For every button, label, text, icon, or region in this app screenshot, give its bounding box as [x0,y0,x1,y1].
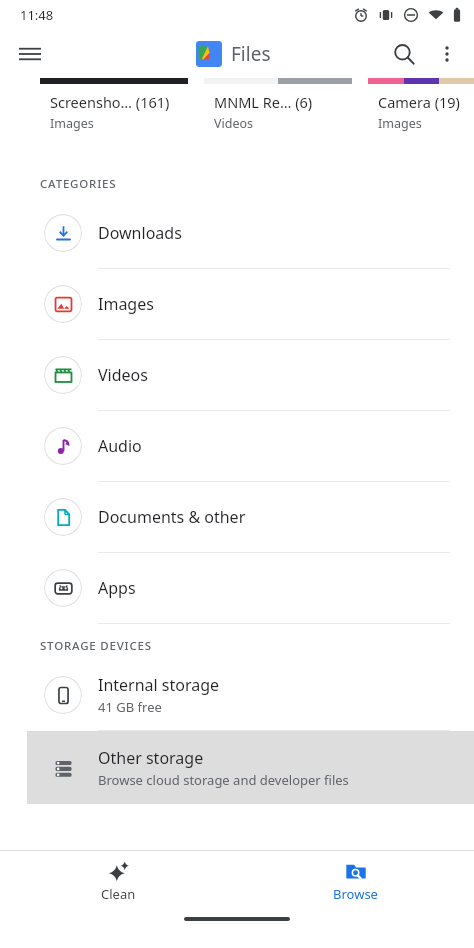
staticText: Browse [333,885,378,903]
staticText: Videos [214,115,254,132]
button[interactable]: Audio [0,411,474,481]
button[interactable]: Browse [237,851,474,911]
staticText: Other storage [98,747,204,769]
button[interactable]: Images [0,269,474,339]
staticText: Documents & other [98,506,246,528]
button[interactable]: More options [426,33,468,75]
staticText: STORAGE DEVICES [40,638,152,654]
button[interactable]: Internal storage [0,660,474,730]
staticText: Downloads [98,222,182,244]
staticText: Files [231,41,271,67]
staticText: Images [378,115,422,132]
button[interactable]: Downloads [0,198,474,268]
staticText: CATEGORIES [40,176,117,192]
staticText: Browse cloud storage and developer files [98,771,349,789]
staticText: 11:48 [20,6,54,24]
staticText: Clean [101,885,136,903]
button[interactable]: Search [382,32,426,76]
staticText: Images [50,115,94,132]
staticText: MNML Re… (6) [214,92,313,112]
staticText: Videos [98,364,148,386]
button[interactable]: Documents & other [0,482,474,552]
staticText: Apps [98,577,136,599]
button[interactable]: Other storage [27,731,474,804]
staticText: Internal storage [98,674,220,696]
staticText: 41 GB free [98,698,162,716]
button[interactable]: Videos [0,340,474,410]
staticText: Audio [98,435,142,457]
button[interactable]: Camera (19) [368,78,474,132]
button[interactable]: MNML Re… (6) [204,78,352,132]
staticText: Screensho… (161) [50,92,170,112]
staticText: Images [98,293,154,315]
button[interactable]: Open navigation menu [8,32,52,76]
button[interactable]: Screensho… (161) [40,78,188,132]
staticText: Camera (19) [378,92,460,112]
button[interactable]: Apps [0,553,474,623]
button[interactable]: Clean [0,851,237,911]
